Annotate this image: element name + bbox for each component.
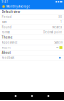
staticText: Round (2, 25, 12, 29)
button[interactable]: Period (0, 14, 64, 20)
staticText: Monthly Average (6, 5, 30, 8)
button[interactable]: Format (0, 30, 64, 35)
staticText: Start (2, 20, 7, 24)
staticText: Lime (56, 47, 59, 48)
staticText: Format (2, 30, 10, 34)
staticText: 1 (60, 20, 62, 24)
button[interactable]: Feedback (0, 55, 64, 60)
staticText: Nearest (52, 25, 62, 29)
staticText: 30 (58, 15, 62, 19)
button[interactable]: Accent (0, 45, 64, 50)
button[interactable]: Default view (0, 9, 64, 14)
staticText: Feedback (2, 56, 14, 59)
staticText: Default view (2, 10, 20, 14)
staticText: Period (2, 15, 12, 19)
button[interactable]: Round (0, 25, 64, 30)
staticText: System (54, 41, 62, 44)
button[interactable]: About (0, 50, 64, 55)
staticText: Accent (2, 46, 11, 49)
button[interactable]: Appearance (0, 40, 64, 45)
button[interactable]: Theme (0, 35, 64, 40)
staticText: 9:41 (2, 0, 9, 3)
staticText: Appearance (2, 41, 18, 44)
staticText: Decimal point (43, 30, 62, 34)
staticText: Theme (2, 36, 13, 39)
staticText: About (2, 51, 11, 54)
button[interactable]: Start (0, 20, 64, 25)
